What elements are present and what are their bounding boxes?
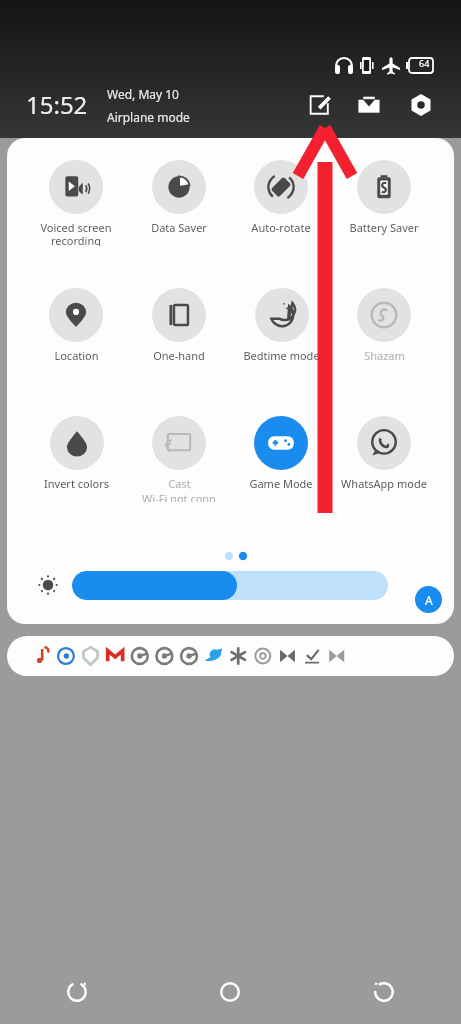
staticText: Location <box>54 348 99 363</box>
staticText: Cast <box>168 476 191 491</box>
button[interactable]: Home <box>153 960 307 1024</box>
staticText: Game Mode <box>249 476 313 491</box>
staticText: Shazam <box>364 348 405 363</box>
button[interactable]: Voiced screen recording <box>28 160 124 246</box>
button[interactable]: WhatsApp mode <box>336 416 432 502</box>
staticText: Invert colors <box>44 476 109 491</box>
staticText: Battery Saver <box>349 220 419 235</box>
staticText: Bedtime mode <box>243 348 320 363</box>
staticText: 64 <box>419 57 430 69</box>
button[interactable]: One-hand <box>131 288 227 374</box>
button[interactable]: Auto brightness <box>415 586 442 613</box>
button[interactable]: Game Mode <box>233 416 329 502</box>
button[interactable]: Battery Saver <box>336 160 432 246</box>
staticText: Airplane mode <box>107 109 190 125</box>
button[interactable]: Brightness <box>27 564 69 606</box>
staticText: 15:52 <box>26 88 88 121</box>
staticText: Wi-Fi not conn <box>142 491 216 502</box>
button[interactable]: Edit tiles <box>302 88 336 122</box>
staticText: Wed, May 10 <box>107 86 179 102</box>
button[interactable]: Cast <box>131 416 227 502</box>
staticText: Data Saver <box>151 220 207 235</box>
button[interactable]: Invert colors <box>28 416 124 502</box>
staticText: Auto-rotate <box>251 220 311 235</box>
button[interactable]: Back <box>0 960 153 1024</box>
staticText: Voiced screen recording <box>40 220 112 246</box>
button[interactable]: Brightness slider <box>72 571 388 600</box>
button[interactable]: Auto-rotate <box>233 160 329 246</box>
button[interactable]: Data Saver <box>131 160 227 246</box>
staticText: A <box>425 592 433 608</box>
button[interactable]: Shazam <box>336 288 432 374</box>
staticText: One-hand <box>153 348 205 363</box>
button[interactable]: Recents <box>307 960 461 1024</box>
button[interactable]: Notifications inbox <box>352 88 386 122</box>
button[interactable]: Location <box>28 288 124 374</box>
button[interactable]: Bedtime mode <box>233 288 329 374</box>
button[interactable]: Settings <box>404 88 438 122</box>
staticText: WhatsApp mode <box>341 476 427 491</box>
